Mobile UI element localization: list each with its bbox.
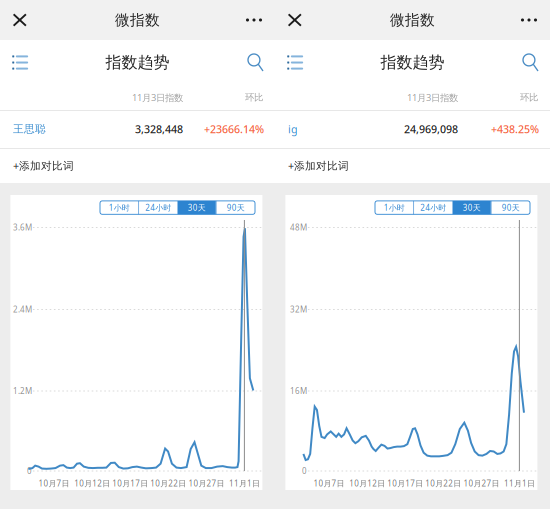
staticText: 0 bbox=[27, 466, 32, 476]
staticText: +438.25% bbox=[491, 122, 539, 136]
staticText: 10月27日 bbox=[188, 478, 224, 489]
staticText: 2.4M bbox=[13, 304, 32, 315]
staticText: 10月7日 bbox=[39, 478, 70, 489]
button[interactable]: 王思聪 bbox=[0, 110, 275, 148]
staticText: 24小时 bbox=[145, 202, 171, 213]
button[interactable]: 1小时 bbox=[100, 201, 138, 214]
staticText: 1.2M bbox=[13, 386, 32, 396]
button[interactable]: ig bbox=[275, 110, 550, 148]
staticText: 11月3日指数 bbox=[407, 91, 458, 104]
staticText: 10月7日 bbox=[314, 478, 345, 489]
staticText: 32M bbox=[290, 304, 307, 315]
button[interactable]: List bbox=[0, 43, 38, 82]
staticText: 16M bbox=[290, 386, 307, 396]
button[interactable]: +添加对比词 bbox=[275, 148, 550, 183]
staticText: 11月3日指数 bbox=[132, 91, 183, 104]
staticText: 11月1日 bbox=[229, 478, 260, 489]
button[interactable]: 90天 bbox=[492, 201, 530, 214]
button[interactable]: 1小时 bbox=[375, 201, 413, 214]
staticText: 10月17日 bbox=[387, 478, 423, 489]
staticText: 1小时 bbox=[384, 202, 405, 213]
staticText: 30天 bbox=[463, 202, 481, 213]
button[interactable]: Search bbox=[513, 43, 550, 82]
button[interactable]: More bbox=[512, 0, 550, 40]
staticText: 30天 bbox=[188, 202, 206, 213]
staticText: 90天 bbox=[502, 202, 520, 213]
staticText: 10月22日 bbox=[150, 478, 186, 489]
staticText: 10月27日 bbox=[463, 478, 499, 489]
staticText: 微指数 bbox=[390, 11, 435, 29]
staticText: +添加对比词 bbox=[13, 158, 74, 173]
staticText: 指数趋势 bbox=[105, 53, 169, 72]
staticText: 48M bbox=[290, 222, 307, 233]
staticText: 1小时 bbox=[109, 202, 130, 213]
button[interactable]: +添加对比词 bbox=[0, 148, 275, 183]
staticText: 10月22日 bbox=[425, 478, 461, 489]
staticText: 王思聪 bbox=[13, 122, 46, 135]
button[interactable]: 24小时 bbox=[139, 201, 177, 214]
button[interactable]: 30天 bbox=[452, 201, 491, 214]
staticText: 环比 bbox=[520, 92, 538, 103]
button[interactable]: Close bbox=[0, 1, 35, 39]
staticText: 10月17日 bbox=[112, 478, 148, 489]
staticText: 10月12日 bbox=[349, 478, 385, 489]
staticText: 11月1日 bbox=[504, 478, 535, 489]
button[interactable]: Search bbox=[238, 43, 275, 82]
staticText: 10月12日 bbox=[74, 478, 110, 489]
staticText: +添加对比词 bbox=[288, 158, 349, 173]
staticText: 3,328,448 bbox=[135, 122, 183, 136]
button[interactable]: 24小时 bbox=[414, 201, 452, 214]
staticText: 0 bbox=[302, 466, 307, 476]
button[interactable]: More bbox=[237, 0, 275, 40]
button[interactable]: List bbox=[275, 43, 313, 82]
staticText: ig bbox=[288, 122, 298, 136]
button[interactable]: 30天 bbox=[177, 201, 216, 214]
button[interactable]: Close bbox=[275, 1, 310, 39]
staticText: 24小时 bbox=[420, 202, 446, 213]
staticText: 3.6M bbox=[13, 222, 32, 233]
staticText: 指数趋势 bbox=[380, 53, 444, 72]
staticText: 环比 bbox=[245, 92, 263, 103]
staticText: 90天 bbox=[227, 202, 245, 213]
staticText: 24,969,098 bbox=[404, 122, 458, 136]
staticText: 微指数 bbox=[115, 11, 160, 29]
staticText: +23666.14% bbox=[204, 122, 264, 136]
button[interactable]: 90天 bbox=[217, 201, 255, 214]
